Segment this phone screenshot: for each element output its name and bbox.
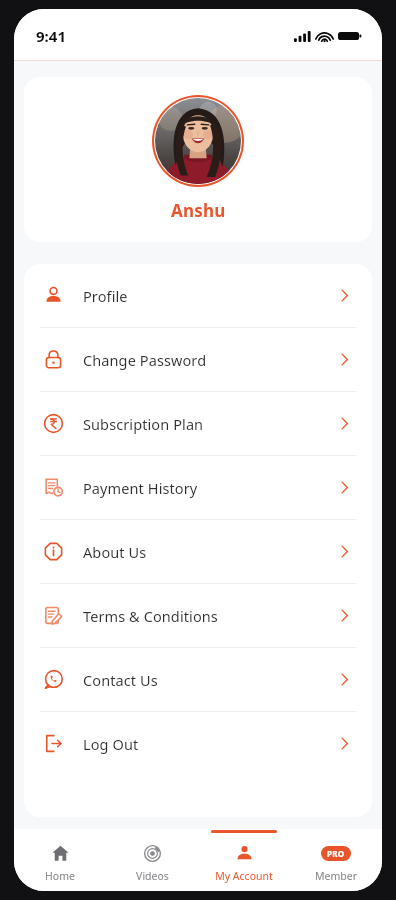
staticText: About Us <box>83 542 147 562</box>
button[interactable]: Videos <box>106 829 198 891</box>
button[interactable]: Profile <box>24 264 372 327</box>
staticText: Home <box>45 869 75 883</box>
button[interactable]: About Us <box>24 520 372 583</box>
staticText: Subscription Plan <box>83 414 204 434</box>
button[interactable]: Terms & Conditions <box>24 584 372 647</box>
staticText: 9:41 <box>36 26 66 46</box>
staticText: Anshu <box>171 199 226 222</box>
button[interactable]: Subscription Plan <box>24 392 372 455</box>
staticText: Payment History <box>83 478 198 498</box>
staticText: Contact Us <box>83 670 158 690</box>
staticText: PRO <box>327 848 345 859</box>
button[interactable]: Home <box>14 829 106 891</box>
button[interactable]: Anshu <box>24 77 372 242</box>
staticText: Terms & Conditions <box>83 606 218 626</box>
staticText: Videos <box>136 869 169 883</box>
button[interactable]: Member <box>290 829 382 891</box>
staticText: Profile <box>83 286 128 306</box>
button[interactable]: Change Password <box>24 328 372 391</box>
button[interactable]: Contact Us <box>24 648 372 711</box>
staticText: My Account <box>215 869 273 883</box>
button[interactable]: Log Out <box>24 712 372 775</box>
button[interactable]: My Account <box>198 829 290 891</box>
button[interactable]: Payment History <box>24 456 372 519</box>
staticText: Log Out <box>83 734 139 754</box>
staticText: Change Password <box>83 350 207 370</box>
staticText: Member <box>315 869 357 883</box>
